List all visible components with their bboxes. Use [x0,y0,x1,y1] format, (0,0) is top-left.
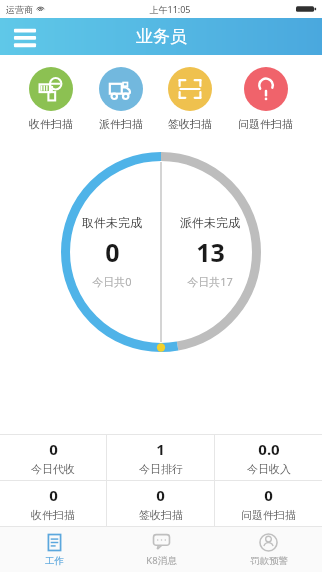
staticText: 0 [264,485,273,505]
staticText: 运营商 [6,4,33,15]
staticText: K8消息 [146,554,177,567]
staticText: 收件扫描 [29,117,73,131]
staticText: 派件未完成 [180,215,240,230]
button[interactable]: 1 [107,435,214,480]
staticText: 取件未完成 [82,215,142,230]
button[interactable]: 0 [107,481,214,526]
staticText: 今日排行 [139,462,183,476]
staticText: 0.0 [258,439,280,459]
button[interactable]: 0.0 [215,435,322,480]
button[interactable]: 0 [215,481,322,526]
staticText: 今日共17 [187,274,233,289]
staticText: 今日代收 [31,462,75,476]
staticText: 今日收入 [247,462,291,476]
staticText: 收件扫描 [31,508,75,522]
staticText: 签收扫描 [168,117,212,131]
button[interactable]: 工作 [0,527,108,572]
staticText: 0 [49,485,58,505]
staticText: 派件扫描 [99,117,143,131]
staticText: 今日共0 [92,274,132,289]
staticText: 签收扫描 [139,508,183,522]
staticText: 罚款预警 [250,555,288,567]
button[interactable]: 罚款预警 [215,527,322,572]
staticText: 1 [156,439,165,459]
staticText: 0 [156,485,165,505]
staticText: 工作 [45,555,64,567]
staticText: 13 [196,235,225,269]
button[interactable]: 派件扫描 [97,65,145,133]
staticText: 问题件扫描 [241,508,296,522]
button[interactable]: Menu [12,24,38,50]
staticText: 业务员 [136,26,187,47]
staticText: 问题件扫描 [238,117,293,131]
staticText: 0 [49,439,58,459]
button[interactable]: K8消息 [108,527,215,572]
button[interactable]: 收件扫描 [27,65,75,133]
button[interactable]: 0 [0,481,106,526]
staticText: 上午11:05 [149,3,191,15]
button[interactable]: 问题件扫描 [236,65,295,133]
staticText: 0 [105,235,120,269]
button[interactable]: 0 [0,435,106,480]
button[interactable]: 签收扫描 [166,65,214,133]
